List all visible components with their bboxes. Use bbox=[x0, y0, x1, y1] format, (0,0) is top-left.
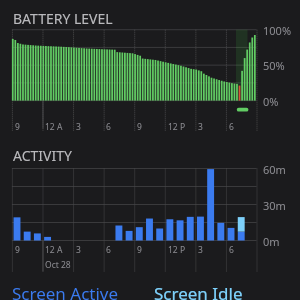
staticText: 6 bbox=[106, 121, 111, 133]
staticText: 6 bbox=[229, 244, 234, 256]
staticText: 12 A bbox=[45, 121, 63, 133]
staticText: 3 bbox=[76, 244, 81, 256]
staticText: Screen Active bbox=[12, 282, 119, 300]
staticText: 50% bbox=[263, 58, 285, 73]
staticText: 100% bbox=[263, 23, 292, 38]
staticText: 60m bbox=[263, 162, 286, 177]
staticText: 6 bbox=[106, 244, 111, 256]
staticText: 0% bbox=[263, 94, 279, 109]
staticText: 9 bbox=[15, 244, 20, 256]
button[interactable]: BATTERY LEVEL bbox=[0, 0, 300, 300]
staticText: 3 bbox=[198, 121, 203, 133]
staticText: Oct 28 bbox=[45, 259, 71, 271]
staticText: 12 P bbox=[168, 121, 186, 133]
staticText: ACTIVITY bbox=[13, 146, 72, 165]
staticText: 3 bbox=[76, 121, 81, 133]
staticText: 3 bbox=[198, 244, 203, 256]
staticText: 12 P bbox=[168, 244, 186, 256]
staticText: 9 bbox=[137, 244, 142, 256]
staticText: 30m bbox=[263, 198, 286, 213]
staticText: 9 bbox=[15, 121, 20, 133]
staticText: 0m bbox=[263, 234, 280, 249]
staticText: 12 A bbox=[45, 244, 63, 256]
staticText: 9 bbox=[137, 121, 142, 133]
staticText: 6 bbox=[229, 121, 234, 133]
staticText: BATTERY LEVEL bbox=[13, 9, 113, 28]
staticText: Screen Idle bbox=[154, 282, 243, 300]
